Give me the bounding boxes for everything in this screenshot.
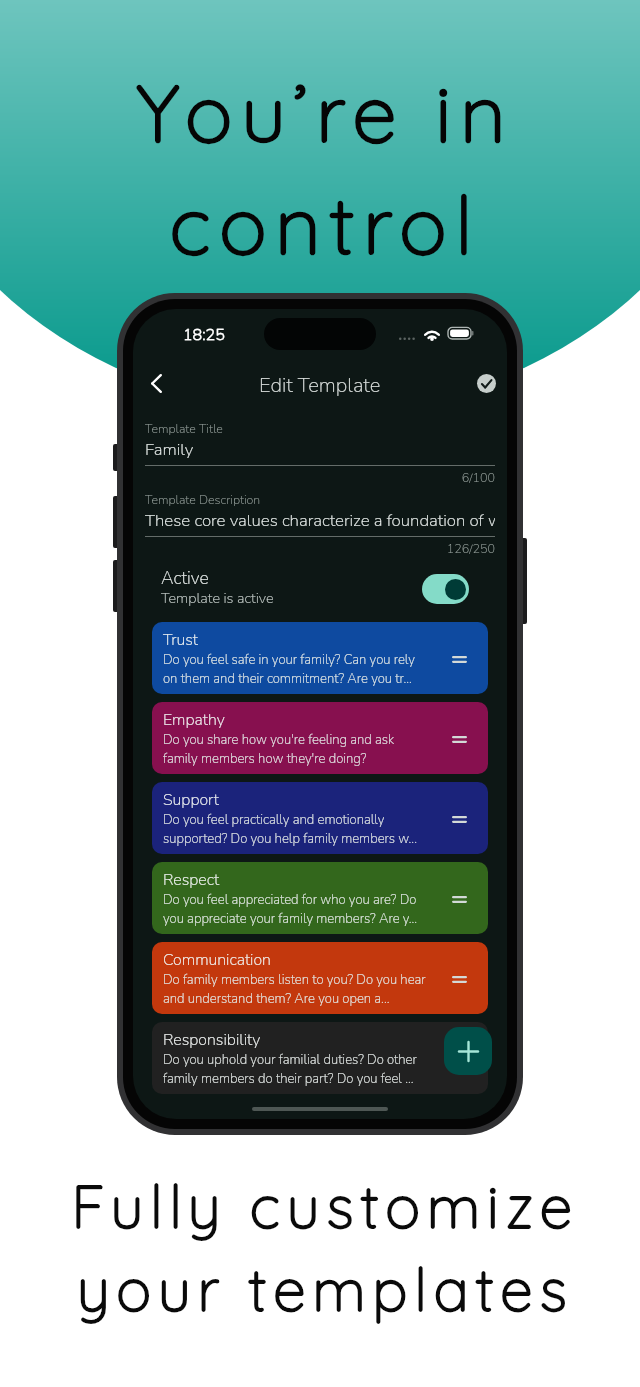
- staticText: Do family members listen to you? Do you …: [163, 971, 429, 1008]
- button[interactable]: Respect: [152, 862, 488, 934]
- staticText: Do you feel safe in your family? Can you…: [163, 651, 429, 688]
- staticText: Empathy: [163, 709, 225, 731]
- staticText: These core values characterize a foundat…: [145, 509, 495, 532]
- staticText: 6/100: [145, 469, 495, 486]
- staticText: Template is active: [161, 588, 274, 608]
- staticText: Template Title: [145, 420, 223, 437]
- staticText: Respect: [163, 869, 220, 891]
- staticText: You’re in control: [5, 62, 640, 274]
- staticText: Fully customize your templates: [5, 1169, 640, 1326]
- staticText: Active: [161, 566, 209, 590]
- staticText: Communication: [163, 949, 271, 971]
- button[interactable]: Add: [444, 1027, 492, 1075]
- button[interactable]: Back: [135, 362, 178, 405]
- staticText: Family: [145, 438, 194, 461]
- staticText: Do you feel appreciated for who you are?…: [163, 891, 429, 928]
- staticText: Do you feel practically and emotionally …: [163, 811, 429, 848]
- staticText: Trust: [163, 629, 198, 651]
- staticText: Do you uphold your familial duties? Do o…: [163, 1051, 429, 1088]
- button[interactable]: Support: [152, 782, 488, 854]
- button[interactable]: Active: [161, 564, 469, 612]
- button[interactable]: Responsibility: [152, 1022, 488, 1094]
- button[interactable]: Trust: [152, 622, 488, 694]
- staticText: Template Description: [145, 491, 261, 508]
- staticText: 126/250: [145, 540, 495, 557]
- staticText: 18:25: [183, 324, 225, 346]
- staticText: Do you share how you're feeling and ask …: [163, 731, 429, 768]
- staticText: Responsibility: [163, 1029, 261, 1051]
- staticText: Edit Template: [259, 371, 381, 399]
- button[interactable]: Communication: [152, 942, 488, 1014]
- button[interactable]: Empathy: [152, 702, 488, 774]
- staticText: Support: [163, 789, 219, 811]
- button[interactable]: Save: [469, 366, 503, 400]
